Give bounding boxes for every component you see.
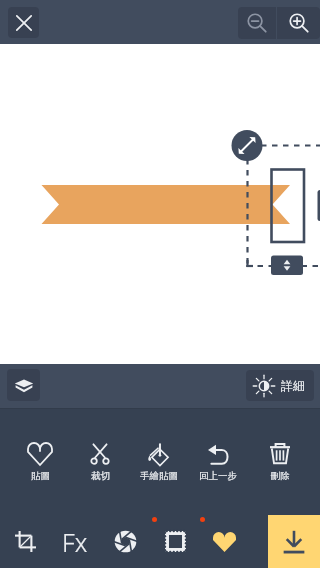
button[interactable]: Save [268,515,320,568]
staticText: 回上一步 [199,470,237,482]
button[interactable]: 手繪貼圖 [128,442,190,482]
staticText: 貼圖 [31,470,50,482]
staticText: 詳細 [281,378,305,393]
button[interactable]: Favorites [202,515,246,568]
button[interactable]: Effects [53,515,97,568]
button[interactable]: 貼圖 [9,442,71,482]
button[interactable]: Stamp [153,515,197,568]
button[interactable]: 刪除 [249,442,311,482]
button[interactable]: Close [8,7,39,38]
button[interactable]: Aperture [103,515,147,568]
staticText: 裁切 [91,470,110,482]
button[interactable]: Zoom out [238,7,276,39]
button[interactable]: Crop [3,515,47,568]
button[interactable]: Zoom in [277,7,320,39]
staticText: 刪除 [271,470,290,482]
button[interactable]: 回上一步 [187,442,249,482]
button[interactable]: Layers [7,369,40,401]
staticText: Fx [62,525,88,559]
staticText: 手繪貼圖 [140,470,178,482]
button[interactable]: 詳細 [246,370,314,401]
button[interactable]: 裁切 [69,442,131,482]
